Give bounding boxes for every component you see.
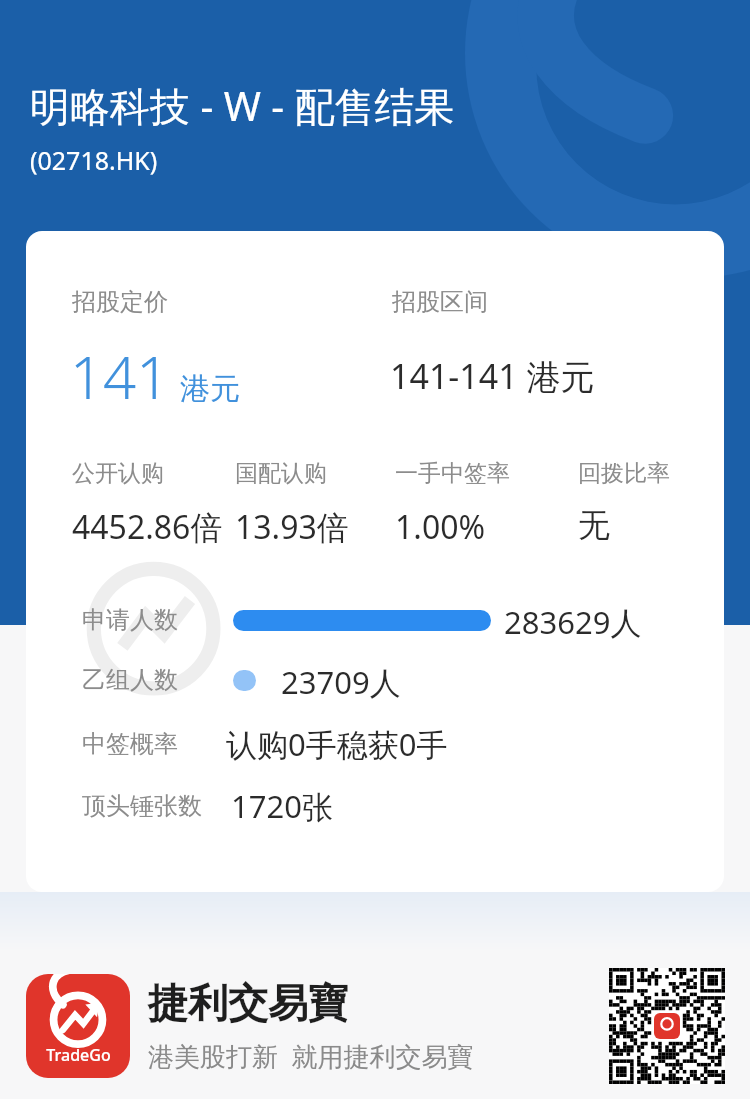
staticText: 1.00% — [395, 505, 486, 549]
staticText: 招股区间 — [392, 287, 488, 317]
staticText: 一手中签率 — [395, 459, 510, 488]
staticText: 公开认购 — [72, 459, 164, 488]
staticText: 顶头锤张数 — [82, 791, 202, 821]
staticText: 23709人 — [281, 661, 401, 703]
staticText: 4452.86倍 — [72, 505, 223, 549]
staticText: 1720张 — [231, 785, 333, 827]
staticText: 283629人 — [504, 601, 642, 643]
staticText: 认购0手稳获0手 — [226, 723, 448, 765]
other: QR code — [609, 968, 725, 1084]
button[interactable]: 招股定价 — [26, 231, 724, 892]
staticText: 141 — [70, 337, 170, 416]
staticText: 捷利交易寶 — [148, 978, 348, 1028]
staticText: 无 — [578, 505, 610, 545]
staticText: 招股定价 — [72, 287, 168, 317]
staticText: 乙组人数 — [82, 665, 178, 695]
staticText: 港元 — [180, 370, 240, 408]
staticText: 141-141 港元 — [390, 353, 595, 399]
staticText: 港美股打新 就用捷利交易寶 — [148, 1038, 474, 1074]
staticText: (02718.HK) — [30, 143, 158, 177]
staticText: 回拨比率 — [578, 459, 670, 488]
staticText: TradeGo — [46, 1044, 111, 1066]
staticText: 国配认购 — [235, 459, 327, 488]
button[interactable]: TradeGo — [0, 952, 750, 1099]
staticText: 中签概率 — [82, 729, 178, 759]
staticText: 明略科技 - W - 配售结果 — [30, 78, 455, 133]
other: TradeGo — [26, 974, 130, 1078]
staticText: 13.93倍 — [235, 505, 349, 549]
staticText: 申请人数 — [82, 605, 178, 635]
